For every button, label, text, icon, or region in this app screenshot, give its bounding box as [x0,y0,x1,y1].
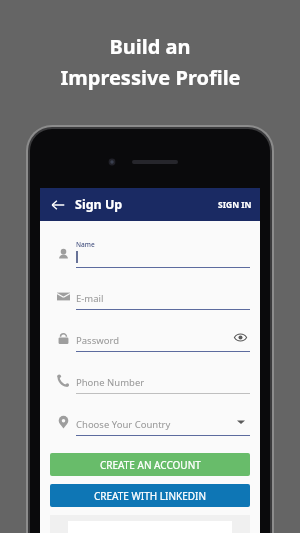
button[interactable]: Choose Your Country [50,401,250,443]
staticText: Name [76,240,95,249]
button[interactable]: Back [46,193,70,217]
button[interactable]: CREATE AN ACCOUNT [50,453,250,476]
staticText: SIGN IN [218,199,252,211]
staticText: CREATE WITH LINKEDIN [94,489,207,503]
button[interactable]: Choose country [232,413,250,431]
staticText: Impressive Profile [60,64,241,91]
button[interactable]: Name [50,233,250,275]
button[interactable]: E-mail [50,275,250,317]
button[interactable]: Password [50,317,250,359]
staticText: Build an [109,33,191,60]
button[interactable]: CREATE WITH LINKEDIN [50,484,250,507]
staticText: Choose Your Country [76,418,171,431]
staticText: Sign Up [75,196,123,213]
staticText: E-mail [76,292,104,305]
button[interactable]: SIGN IN [210,193,260,217]
staticText: CREATE AN ACCOUNT [100,458,201,472]
staticText: Password [76,334,119,347]
button[interactable]: Show password [230,327,250,347]
staticText: Phone Number [76,376,145,389]
button[interactable]: Phone Number [50,359,250,401]
